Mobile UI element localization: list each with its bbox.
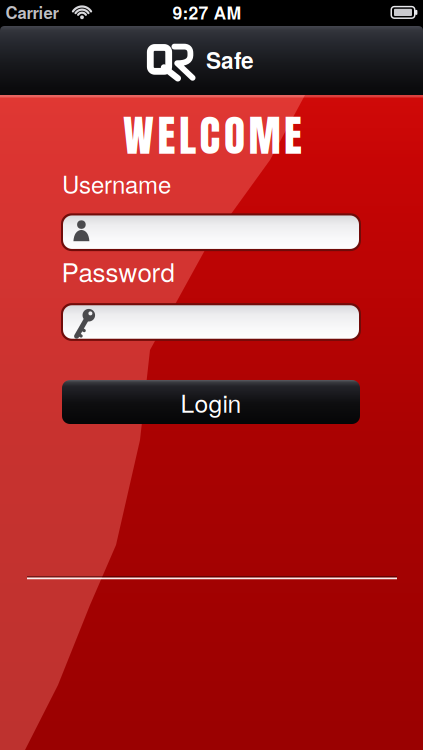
staticText: Login	[180, 384, 241, 420]
staticText: Username	[62, 166, 171, 201]
button[interactable]: Password	[61, 303, 361, 341]
staticText: WELCOME	[123, 103, 302, 168]
staticText: 9:27 AM	[172, 0, 241, 25]
button[interactable]: Username	[61, 213, 361, 251]
button[interactable]: Login	[62, 380, 360, 424]
staticText: Carrier	[5, 0, 58, 24]
staticText: Safe	[206, 44, 254, 76]
staticText: Password	[61, 252, 174, 290]
